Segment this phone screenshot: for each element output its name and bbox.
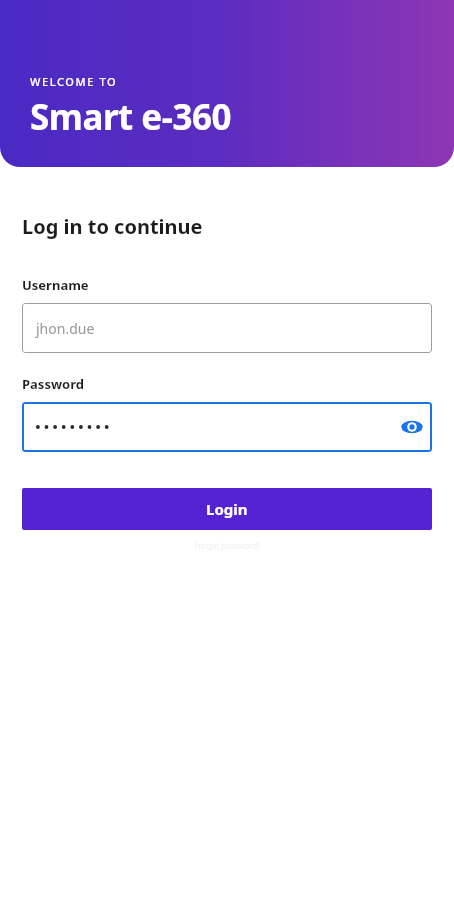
staticText: WELCOME TO <box>30 74 118 89</box>
button[interactable]: jhon.due <box>22 303 432 353</box>
button[interactable]: Show password <box>22 402 432 452</box>
staticText: Smart e-360 <box>30 93 231 141</box>
staticText: Forgot password? <box>194 540 261 551</box>
staticText: jhon.due <box>36 319 95 338</box>
button[interactable]: Show password <box>392 407 432 447</box>
staticText: Password <box>22 375 84 393</box>
button[interactable]: Login <box>22 488 432 530</box>
staticText: Username <box>22 276 89 294</box>
staticText: Login <box>206 499 248 519</box>
staticText: Log in to continue <box>22 213 203 240</box>
